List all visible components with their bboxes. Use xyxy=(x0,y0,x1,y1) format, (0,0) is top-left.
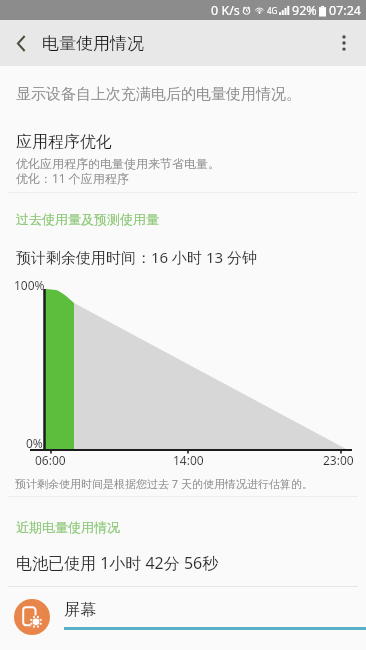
staticText: 电池已使用 1小时 42分 56秒 xyxy=(16,552,219,574)
staticText: 电量使用情况 xyxy=(42,33,144,54)
button[interactable]: 应用程序优化 xyxy=(0,126,366,188)
staticText: 显示设备自上次充满电后的电量使用情况。 xyxy=(16,85,301,104)
staticText: 07:24 xyxy=(329,2,361,19)
staticText: 0 K/s xyxy=(211,2,240,19)
staticText: 23:00 xyxy=(323,452,354,468)
staticText: 优化应用程序的电量使用来节省电量。 xyxy=(16,156,220,171)
staticText: 应用程序优化 xyxy=(16,132,112,152)
staticText: 近期电量使用情况 xyxy=(16,519,120,535)
button[interactable]: More options xyxy=(322,20,366,66)
staticText: 06:00 xyxy=(35,452,66,468)
staticText: 100% xyxy=(14,277,45,293)
button[interactable]: Back xyxy=(0,20,42,66)
staticText: 优化：11 个应用程序 xyxy=(16,170,129,186)
staticText: 14:00 xyxy=(173,452,204,468)
staticText: 预计剩余使用时间：16 小时 13 分钟 xyxy=(16,247,258,267)
staticText: 0% xyxy=(26,435,43,451)
button[interactable]: 屏幕 xyxy=(0,587,366,650)
staticText: 预计剩余使用时间是根据您过去 7 天的使用情况进行估算的。 xyxy=(15,476,314,491)
staticText: 92% xyxy=(292,2,317,19)
staticText: 4G xyxy=(267,5,278,16)
staticText: 过去使用量及预测使用量 xyxy=(16,211,159,227)
staticText: 屏幕 xyxy=(64,600,96,620)
